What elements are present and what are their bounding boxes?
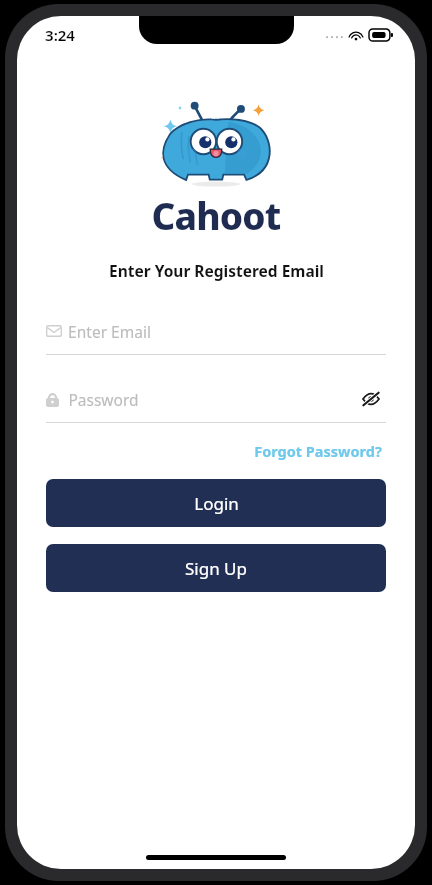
staticText: Forgot Password? xyxy=(254,441,382,461)
staticText: Password xyxy=(68,389,139,410)
button[interactable]: Enter Email xyxy=(46,316,386,355)
staticText: Sign Up xyxy=(185,557,247,580)
staticText: Enter Your Registered Email xyxy=(109,260,324,281)
staticText: 3:24 xyxy=(45,25,75,45)
staticText: Enter Email xyxy=(68,321,151,342)
button[interactable]: Forgot Password? xyxy=(250,437,386,465)
staticText: Cahoot xyxy=(151,190,281,240)
button[interactable]: Show password xyxy=(356,384,386,414)
button[interactable]: Password xyxy=(46,384,386,423)
button[interactable]: Sign Up xyxy=(46,544,386,592)
staticText: Login xyxy=(194,492,239,515)
button[interactable]: Login xyxy=(46,479,386,527)
